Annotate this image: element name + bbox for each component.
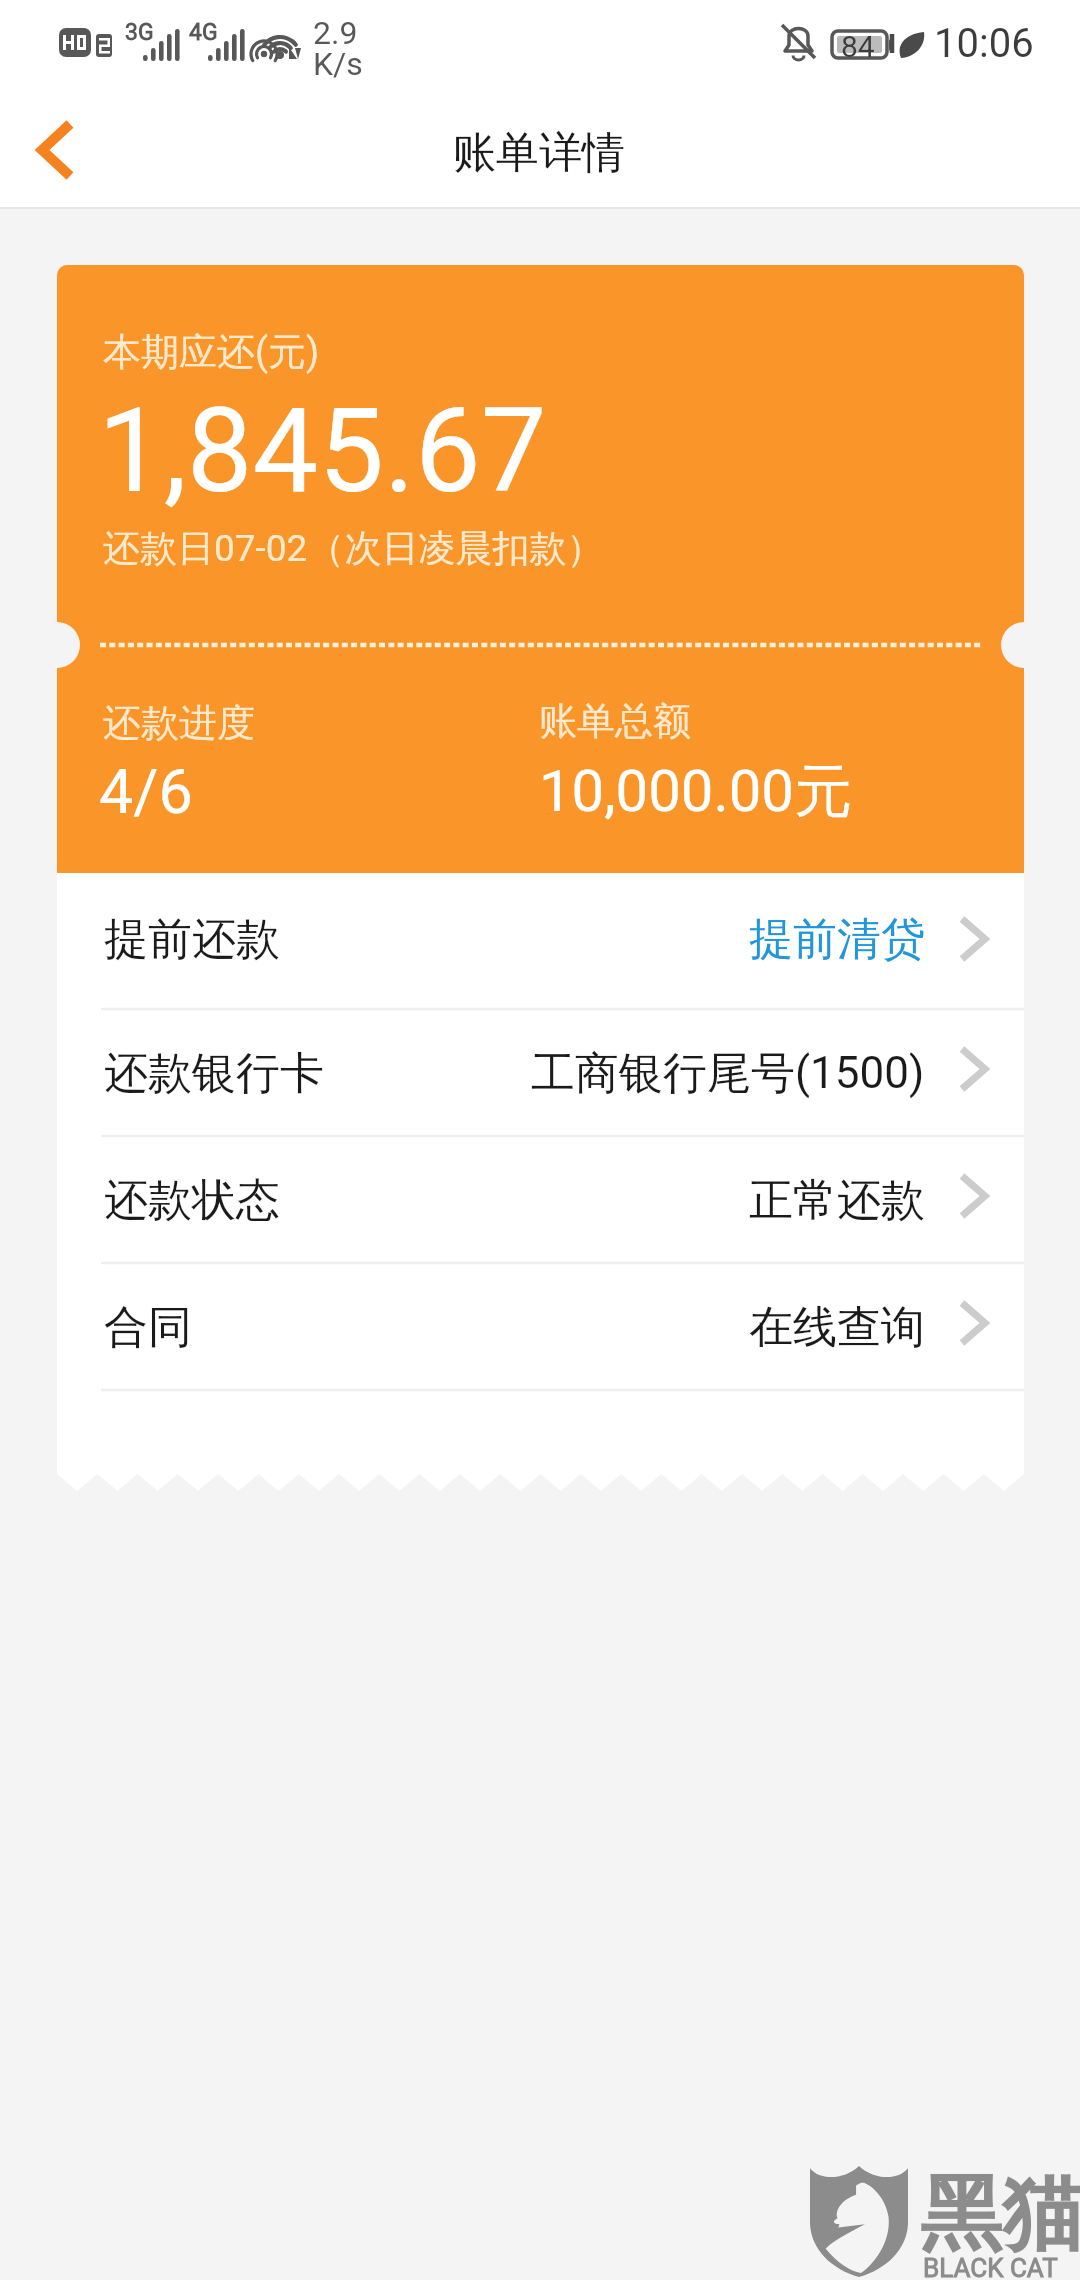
- staticText: BLACK CAT: [923, 2253, 1058, 2280]
- button[interactable]: Back: [0, 92, 110, 209]
- staticText: 还款进度: [103, 699, 255, 747]
- staticText: 提前还款: [104, 912, 280, 967]
- staticText: 84: [841, 29, 875, 64]
- staticText: 10,000.00元: [539, 755, 852, 828]
- staticText: 还款日07-02（次日凌晨扣款）: [103, 525, 604, 572]
- staticText: 黑猫: [920, 2163, 1080, 2266]
- staticText: 账单总额: [539, 697, 691, 745]
- staticText: 3G: [125, 19, 154, 46]
- staticText: 提前清贷: [749, 912, 925, 967]
- staticText: K/s: [313, 45, 363, 83]
- staticText: 10:06: [934, 20, 1034, 67]
- staticText: 4G: [189, 19, 218, 46]
- staticText: 在线查询: [749, 1300, 925, 1355]
- staticText: 2.9: [313, 14, 358, 52]
- staticText: 1,845.67: [98, 382, 547, 519]
- staticText: 还款银行卡: [104, 1046, 324, 1101]
- staticText: 正常还款: [749, 1173, 925, 1228]
- staticText: 账单详情: [453, 126, 625, 180]
- button[interactable]: 还款银行卡: [57, 1009, 1024, 1136]
- button[interactable]: 提前还款: [57, 870, 1024, 1006]
- staticText: 4/6: [99, 756, 193, 827]
- button[interactable]: 还款状态: [57, 1136, 1024, 1263]
- staticText: 合同: [104, 1300, 192, 1355]
- staticText: 工商银行尾号(1500): [531, 1046, 925, 1101]
- button[interactable]: 合同: [57, 1263, 1024, 1390]
- staticText: 还款状态: [104, 1173, 280, 1228]
- staticText: 本期应还(元): [103, 328, 320, 376]
